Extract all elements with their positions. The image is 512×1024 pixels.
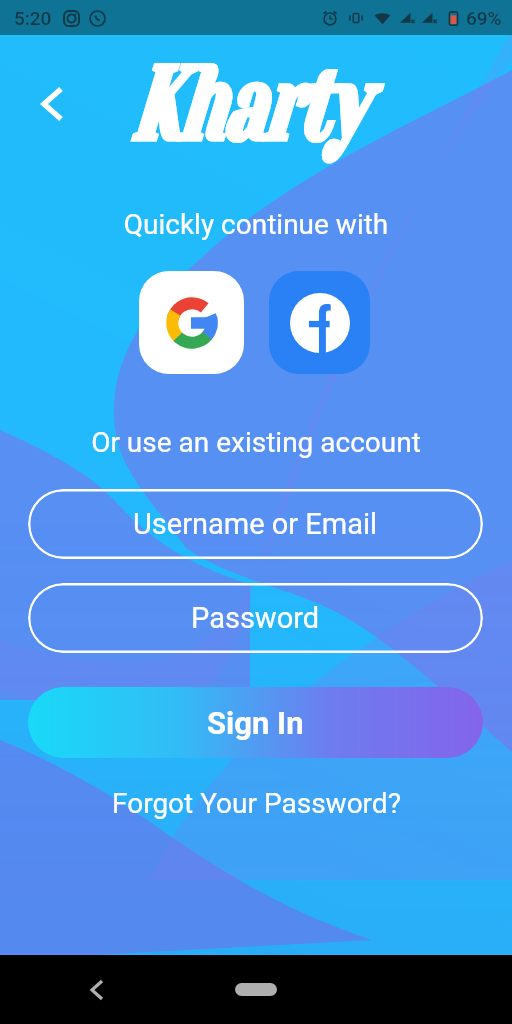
staticText: 69%: [466, 7, 502, 29]
staticText: Or use an existing account: [0, 426, 512, 459]
staticText: Username or Email: [133, 507, 378, 541]
staticText: Quickly continue with: [0, 208, 512, 241]
staticText: Kharty: [129, 47, 362, 164]
button[interactable]: Forgot Your Password?: [102, 783, 411, 824]
button[interactable]: Back: [75, 968, 119, 1012]
button[interactable]: Password: [28, 583, 483, 653]
button[interactable]: Sign In: [28, 687, 483, 758]
staticText: Sign In: [207, 705, 304, 741]
button[interactable]: Continue with Facebook: [269, 271, 370, 374]
staticText: Password: [191, 601, 320, 635]
button[interactable]: Continue with Google: [139, 271, 244, 374]
button[interactable]: Home: [235, 983, 277, 996]
button[interactable]: Username or Email: [28, 489, 483, 559]
staticText: Forgot Your Password?: [112, 787, 401, 820]
button[interactable]: Back: [28, 80, 76, 128]
staticText: 5:20: [14, 7, 52, 29]
